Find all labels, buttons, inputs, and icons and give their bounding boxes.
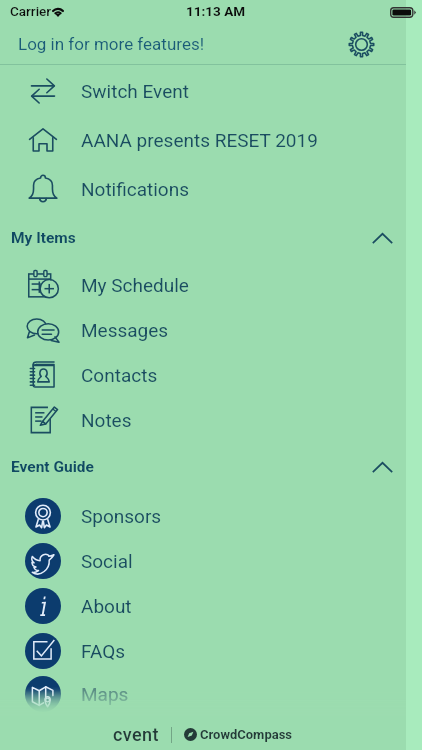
staticText: My Schedule xyxy=(81,274,189,296)
staticText: FAQs xyxy=(81,640,126,662)
button[interactable]: Sponsors xyxy=(0,493,406,539)
staticText: cvent xyxy=(113,724,159,745)
staticText: Contacts xyxy=(81,364,158,386)
staticText: 11:13 AM xyxy=(186,3,246,19)
button[interactable]: Event Guide xyxy=(0,444,406,490)
button[interactable]: Notifications xyxy=(0,166,406,212)
staticText: Messages xyxy=(81,319,169,341)
button[interactable]: My Items xyxy=(0,215,406,261)
button[interactable]: FAQs xyxy=(0,628,406,674)
staticText: Event Guide xyxy=(11,458,94,476)
button[interactable]: About xyxy=(0,583,406,629)
button[interactable]: Log in for more features! xyxy=(0,28,211,60)
staticText: My Items xyxy=(11,229,76,247)
button[interactable]: Switch Event xyxy=(0,68,406,114)
staticText: AANA presents RESET 2019 xyxy=(81,129,318,151)
button[interactable]: Social xyxy=(0,538,406,584)
button[interactable]: Settings xyxy=(348,31,375,58)
staticText: Switch Event xyxy=(81,80,189,102)
button[interactable]: Contacts xyxy=(0,352,406,398)
button[interactable]: My Schedule xyxy=(0,262,406,308)
button[interactable]: Notes xyxy=(0,397,406,443)
staticText: About xyxy=(81,595,132,617)
staticText: Notes xyxy=(81,409,132,431)
staticText: CrowdCompass xyxy=(200,727,293,742)
staticText: Notifications xyxy=(81,178,190,200)
button[interactable]: AANA presents RESET 2019 xyxy=(0,117,406,163)
staticText: Social xyxy=(81,550,133,572)
button[interactable]: Maps xyxy=(0,671,406,717)
staticText: Sponsors xyxy=(81,505,162,527)
button[interactable]: Messages xyxy=(0,307,406,353)
staticText: Carrier xyxy=(10,3,52,19)
staticText: Maps xyxy=(81,683,129,705)
